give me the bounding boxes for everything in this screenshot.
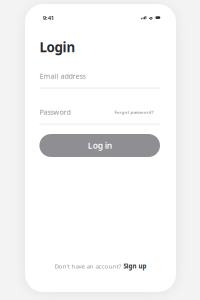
staticText: Forgot password? — [114, 109, 153, 115]
staticText: Don't have an account? — [54, 262, 123, 270]
button[interactable]: Log in — [39, 134, 160, 157]
staticText: Password — [39, 107, 70, 117]
button[interactable]: Email address — [39, 71, 160, 88]
staticText: Login — [39, 38, 75, 56]
staticText: Log in — [88, 140, 112, 151]
button[interactable]: Forgot password? — [114, 107, 160, 116]
staticText: Sign up — [123, 262, 146, 270]
staticText: 9:41 — [43, 13, 54, 22]
button[interactable]: Don't have an account? — [54, 262, 146, 270]
staticText: Email address — [39, 71, 85, 81]
